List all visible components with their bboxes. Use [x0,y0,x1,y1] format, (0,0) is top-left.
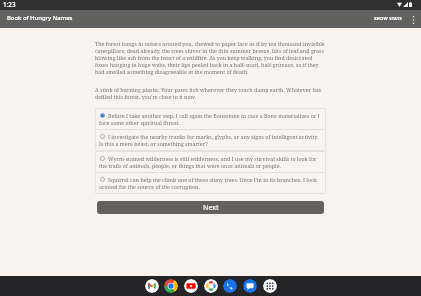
staticText: Squirrel can help me climb one of these … [99,176,322,190]
staticText: Wyrm-stained wilderness is still wildern… [99,155,322,169]
staticText: Before I take another step, I call upon … [99,112,322,126]
button[interactable]: Gmail [145,279,159,293]
staticText: SHOW STATS [374,16,403,22]
button[interactable]: Before I take another step, I call upon … [95,108,326,130]
button[interactable]: Chrome [164,279,178,293]
staticText: Next [203,203,219,213]
button[interactable]: Phone [223,279,237,293]
staticText: A stink of burning plastic. Your paws it… [95,86,326,100]
button[interactable]: SHOW STATS [370,12,407,26]
staticText: The forest hangs in tatters around you, … [95,40,326,75]
staticText: 1:23 [3,0,16,9]
button[interactable]: Next [97,201,324,214]
button[interactable]: Wyrm-stained wilderness is still wildern… [95,151,326,173]
button[interactable]: More options [407,13,420,26]
button[interactable]: Photos [204,279,218,293]
staticText: I investigate the nearby trunks for mark… [99,133,322,147]
button[interactable]: All apps [263,279,277,293]
button[interactable]: I investigate the nearby trunks for mark… [95,129,326,151]
button[interactable]: YouTube [184,279,198,293]
staticText: Book of Hungry Names [7,14,73,22]
button[interactable]: Messages [243,279,257,293]
button[interactable]: Squirrel can help me climb one of these … [95,172,326,194]
